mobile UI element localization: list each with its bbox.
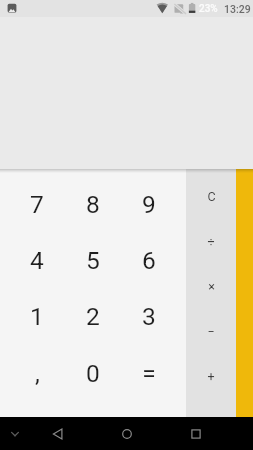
button[interactable]: 3 <box>121 288 177 345</box>
button[interactable]: Hide keyboard <box>3 422 27 446</box>
staticText: 8 <box>86 190 100 219</box>
button[interactable]: Backspace <box>236 169 253 417</box>
button[interactable]: C <box>186 173 236 219</box>
button[interactable]: Home <box>115 422 139 446</box>
staticText: 7 <box>30 190 44 219</box>
staticText: = <box>142 359 156 388</box>
button[interactable]: + <box>186 354 236 399</box>
button[interactable]: ÷ <box>186 219 236 264</box>
staticText: 4 <box>30 246 44 275</box>
button[interactable]: 2 <box>65 288 121 345</box>
button[interactable]: Recents <box>184 422 208 446</box>
staticText: 9 <box>142 190 156 219</box>
button[interactable]: = <box>121 345 177 402</box>
button[interactable]: , <box>9 345 65 402</box>
staticText: , <box>35 359 40 388</box>
staticText: − <box>207 324 215 339</box>
staticText: 23% <box>199 3 218 15</box>
button[interactable]: 0 <box>65 345 121 402</box>
button[interactable]: − <box>186 309 236 354</box>
staticText: ÷ <box>207 234 215 249</box>
staticText: 6 <box>142 246 156 275</box>
staticText: 0 <box>86 359 100 388</box>
button[interactable]: 9 <box>121 176 177 232</box>
button[interactable]: 1 <box>9 288 65 345</box>
staticText: C <box>207 189 216 204</box>
staticText: + <box>207 369 215 384</box>
button[interactable]: 4 <box>9 232 65 288</box>
button[interactable]: 6 <box>121 232 177 288</box>
staticText: 1 <box>30 302 44 331</box>
staticText: 2 <box>86 302 100 331</box>
staticText: 3 <box>142 302 156 331</box>
button[interactable]: 5 <box>65 232 121 288</box>
button[interactable]: Back <box>46 422 70 446</box>
button[interactable]: 7 <box>9 176 65 232</box>
button[interactable]: 8 <box>65 176 121 232</box>
staticText: × <box>208 279 215 294</box>
staticText: 5 <box>86 246 100 275</box>
button[interactable]: × <box>186 264 236 309</box>
staticText: 13:29 <box>224 3 251 15</box>
